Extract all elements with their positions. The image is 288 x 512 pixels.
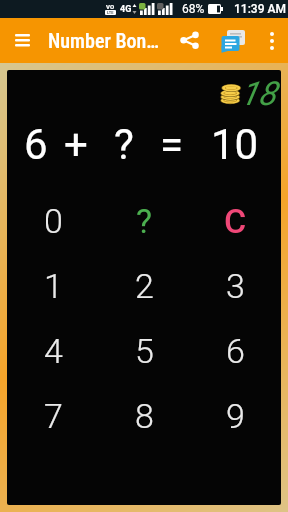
button[interactable] [167, 18, 211, 63]
staticText: 10 [211, 120, 259, 169]
staticText: 1 [44, 266, 63, 306]
staticText: 6 [24, 120, 48, 169]
button[interactable]: 2 [99, 253, 190, 318]
staticText: ? [136, 201, 153, 241]
staticText: = [160, 120, 184, 169]
staticText: 0 [44, 201, 63, 241]
button[interactable]: 1 [7, 253, 99, 318]
button[interactable]: C [190, 188, 281, 253]
staticText: + [64, 120, 88, 169]
staticText: Number Bon… [48, 29, 159, 52]
staticText: 3 [226, 266, 245, 306]
button[interactable]: 0 [7, 188, 99, 253]
staticText: LTE [107, 10, 114, 15]
button[interactable]: 3 [190, 253, 281, 318]
staticText: ? [114, 120, 134, 169]
staticText: 4 [44, 331, 63, 371]
staticText: C [224, 201, 247, 241]
button[interactable]: 4 [7, 318, 99, 383]
button[interactable]: 9 [190, 383, 281, 448]
staticText: 7 [44, 396, 63, 436]
staticText: 18 [240, 74, 276, 113]
staticText: 11:39 AM [234, 2, 286, 16]
staticText: 4G [120, 4, 132, 15]
staticText: VO [106, 3, 115, 10]
staticText: 9 [226, 396, 245, 436]
staticText: 6 [226, 331, 245, 371]
button[interactable]: 5 [99, 318, 190, 383]
button[interactable]: 6 [190, 318, 281, 383]
button[interactable] [255, 18, 288, 63]
button[interactable]: ? [99, 188, 190, 253]
staticText: 2 [135, 266, 154, 306]
staticText: 5 [135, 331, 154, 371]
button[interactable]: 7 [7, 383, 99, 448]
button[interactable] [211, 18, 255, 63]
button[interactable]: 8 [99, 383, 190, 448]
staticText: 8 [135, 396, 154, 436]
button[interactable] [0, 18, 45, 63]
staticText: 68% [182, 2, 205, 16]
